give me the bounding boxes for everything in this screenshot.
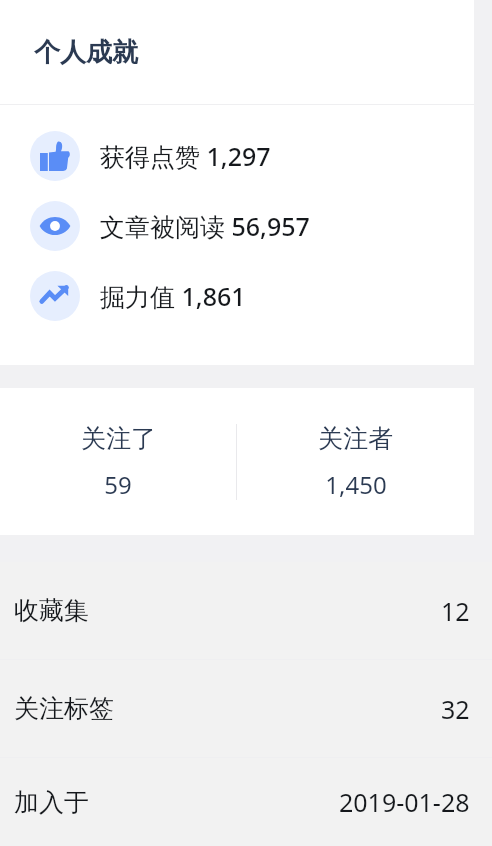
other: Power value <box>30 271 80 321</box>
staticText: 12 <box>441 594 470 628</box>
other: Likes <box>30 131 80 181</box>
staticText: 加入于 <box>14 787 89 818</box>
button[interactable]: 加入于 <box>0 758 492 846</box>
staticText: 59 <box>104 468 132 501</box>
staticText: 文章被阅读 56,957 <box>100 209 310 243</box>
staticText: 收藏集 <box>14 595 89 626</box>
staticText: 关注标签 <box>14 693 114 724</box>
staticText: 掘力值 1,861 <box>100 279 246 313</box>
button[interactable]: Views <box>0 191 474 261</box>
staticText: 关注了 <box>81 423 156 454</box>
button[interactable]: 收藏集 <box>0 562 492 659</box>
staticText: 个人成就 <box>34 36 138 69</box>
staticText: 关注者 <box>318 423 393 454</box>
staticText: 1,450 <box>325 468 387 501</box>
button[interactable]: 关注了 <box>0 423 236 501</box>
button[interactable]: Power value <box>0 261 474 331</box>
button[interactable]: 关注者 <box>237 423 474 501</box>
button[interactable]: 关注标签 <box>0 660 492 757</box>
button[interactable]: Likes <box>0 121 474 191</box>
other: Views <box>30 201 80 251</box>
staticText: 32 <box>441 692 470 726</box>
staticText: 2019-01-28 <box>339 785 470 819</box>
staticText: 获得点赞 1,297 <box>100 139 271 173</box>
button[interactable]: 个人成就 <box>0 0 474 104</box>
